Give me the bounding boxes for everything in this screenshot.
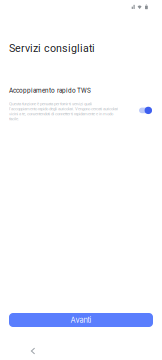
staticText: Questa funzione è pensata per fornirti s…: [9, 101, 118, 121]
staticText: Avanti: [70, 315, 91, 324]
button[interactable]: Avanti: [9, 313, 153, 327]
staticText: Servizi consigliati: [9, 42, 95, 55]
button[interactable]: Indietro: [24, 342, 42, 360]
staticText: Accoppiamento rapido TWS: [9, 87, 91, 94]
button[interactable]: Accoppiamento rapido TWS: [139, 107, 152, 114]
